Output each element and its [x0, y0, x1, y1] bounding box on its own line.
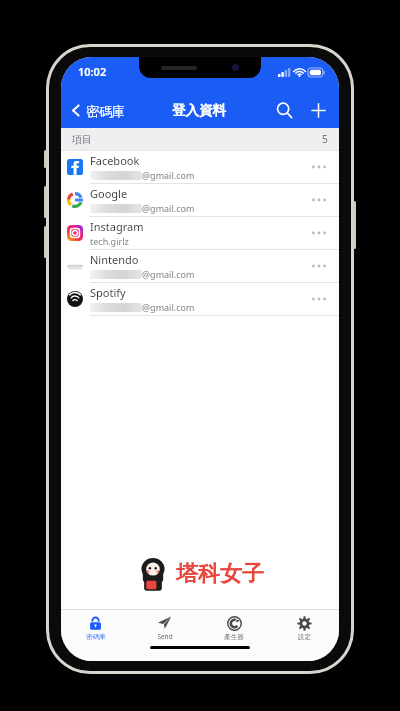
button[interactable]: Spotify: [61, 283, 339, 316]
staticText: @gmail.com: [142, 202, 195, 214]
staticText: 設定: [298, 633, 311, 641]
button[interactable]: 產生器: [199, 610, 269, 646]
staticText: 項目: [72, 133, 92, 146]
button[interactable]: Send: [130, 610, 199, 646]
button[interactable]: Google: [61, 184, 339, 217]
button[interactable]: Instagram: [61, 217, 339, 250]
staticText: Facebook: [90, 153, 140, 168]
staticText: Send: [157, 632, 173, 641]
staticText: tech.girlz: [90, 235, 129, 247]
staticText: Google: [90, 186, 128, 201]
button[interactable]: Facebook: [61, 151, 339, 184]
staticText: 密碼庫: [86, 633, 106, 641]
button[interactable]: More options: [307, 287, 331, 311]
button[interactable]: Add: [301, 93, 335, 127]
button[interactable]: Nintendo: [61, 250, 339, 283]
staticText: 10:02: [78, 64, 107, 79]
button[interactable]: 密碼庫: [61, 610, 130, 646]
button[interactable]: More options: [307, 221, 331, 245]
staticText: Spotify: [90, 285, 126, 300]
button[interactable]: More options: [307, 155, 331, 179]
button[interactable]: More options: [307, 188, 331, 212]
button[interactable]: Search: [267, 93, 301, 127]
staticText: @gmail.com: [142, 301, 195, 313]
staticText: Nintendo: [90, 252, 139, 267]
staticText: 密碼庫: [86, 103, 125, 119]
staticText: 產生器: [224, 633, 244, 641]
staticText: 塔科女子: [176, 560, 264, 588]
button[interactable]: 設定: [269, 610, 339, 646]
button[interactable]: 密碼庫: [61, 99, 131, 122]
staticText: 5: [322, 132, 328, 146]
staticText: @gmail.com: [142, 169, 195, 181]
button[interactable]: More options: [307, 254, 331, 278]
staticText: 登入資料: [172, 102, 226, 119]
staticText: Instagram: [90, 219, 144, 234]
staticText: @gmail.com: [142, 268, 195, 280]
